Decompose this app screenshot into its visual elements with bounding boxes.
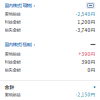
staticText: 損失金額 [4,27,20,33]
staticText: 国内株式(信用) [4,41,32,48]
staticText: +390円 [78,51,95,57]
staticText: 1,200円 [77,19,95,25]
staticText: 実現損益 [4,11,20,17]
staticText: -3,740円 [75,27,95,33]
staticText: 0円 [87,67,95,73]
staticText: 国内株式(現物) [4,2,32,9]
staticText: 実現損益 [4,91,20,98]
button[interactable]: 国内株式(信用) [0,40,100,49]
staticText: 利益金額 [4,19,20,25]
button[interactable]: Display options [85,2,95,9]
staticText: 損失金額 [4,67,20,73]
staticText: -2,540円 [75,11,95,17]
staticText: -2,150円 [75,91,95,98]
button[interactable]: 国内株式(現物) [0,1,100,10]
staticText: 390円 [81,59,95,65]
staticText: 合計 [4,84,14,91]
staticText: 利益金額 [4,59,20,65]
staticText: 実現損益 [4,51,20,57]
